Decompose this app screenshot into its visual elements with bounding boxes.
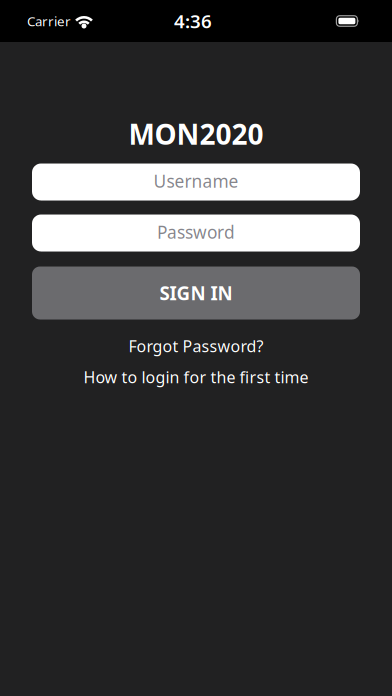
staticText: Forgot Password? [128, 335, 263, 357]
staticText: Password [157, 220, 235, 243]
staticText: MON2020 [128, 115, 263, 153]
button[interactable]: Username [32, 163, 360, 200]
button[interactable]: Forgot Password? [128, 336, 263, 356]
staticText: Carrier [27, 12, 71, 30]
staticText: SIGN IN [159, 281, 232, 305]
button[interactable]: SIGN IN [32, 266, 360, 319]
staticText: Username [153, 169, 238, 192]
staticText: How to login for the first time [83, 366, 308, 388]
button[interactable]: How to login for the first time [83, 367, 308, 387]
staticText: 4:36 [174, 9, 212, 33]
button[interactable]: Password [32, 214, 360, 251]
